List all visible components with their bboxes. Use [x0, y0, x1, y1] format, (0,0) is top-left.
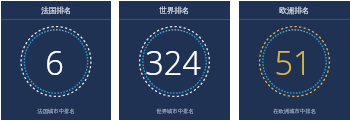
- button[interactable]: 世界排名: [119, 1, 230, 120]
- staticText: 法国排名: [41, 6, 72, 16]
- staticText: 世界排名: [159, 6, 190, 16]
- button[interactable]: 法国排名: [1, 1, 111, 120]
- staticText: 51: [274, 40, 312, 84]
- staticText: 世界城市中排名: [156, 108, 194, 115]
- button[interactable]: 欧洲排名: [239, 1, 350, 120]
- staticText: 法国城市中排名: [37, 108, 75, 115]
- staticText: 欧洲排名: [279, 6, 310, 16]
- staticText: 324: [145, 40, 201, 84]
- staticText: 6: [45, 40, 64, 84]
- staticText: 在欧洲城市中排名: [273, 108, 316, 115]
